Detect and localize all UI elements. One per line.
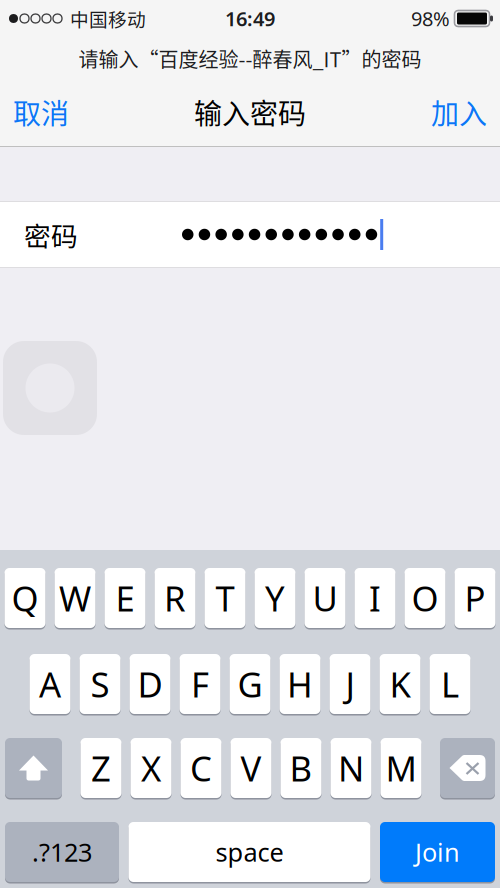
button[interactable]: F: [179, 654, 220, 714]
staticText: .?123: [32, 835, 92, 869]
staticText: O: [411, 575, 438, 621]
staticText: U: [312, 575, 337, 621]
button[interactable]: E: [104, 568, 145, 628]
staticText: 密码: [24, 215, 78, 254]
staticText: Q: [11, 575, 38, 621]
staticText: K: [389, 661, 410, 707]
staticText: D: [137, 661, 162, 707]
staticText: S: [90, 661, 109, 707]
button[interactable]: C: [180, 738, 221, 798]
staticText: T: [215, 575, 234, 621]
staticText: W: [59, 575, 91, 621]
button[interactable]: Join: [380, 822, 495, 882]
button[interactable]: D: [129, 654, 170, 714]
button[interactable]: H: [279, 654, 320, 714]
staticText: X: [141, 745, 161, 791]
staticText: G: [237, 661, 262, 707]
button[interactable]: Shift: [5, 738, 62, 798]
staticText: Z: [91, 745, 111, 791]
staticText: N: [338, 745, 364, 791]
staticText: 16:49: [225, 5, 275, 32]
staticText: M: [385, 745, 416, 791]
staticText: E: [115, 575, 134, 621]
staticText: I: [369, 575, 381, 621]
button[interactable]: I: [354, 568, 395, 628]
staticText: Y: [265, 575, 285, 621]
staticText: B: [289, 745, 312, 791]
button[interactable]: Delete: [440, 738, 495, 798]
button[interactable]: .?123: [5, 822, 119, 882]
staticText: A: [39, 661, 61, 707]
staticText: H: [287, 661, 313, 707]
button[interactable]: M: [380, 738, 421, 798]
staticText: space: [215, 835, 283, 869]
button[interactable]: Q: [4, 568, 45, 628]
button[interactable]: W: [54, 568, 95, 628]
button[interactable]: L: [429, 654, 470, 714]
staticText: P: [464, 575, 485, 621]
staticText: 取消: [13, 92, 69, 132]
button[interactable]: N: [330, 738, 371, 798]
button[interactable]: B: [280, 738, 321, 798]
button[interactable]: X: [130, 738, 171, 798]
button[interactable]: J: [329, 654, 370, 714]
button[interactable]: G: [229, 654, 270, 714]
button[interactable]: U: [304, 568, 345, 628]
staticText: 加入: [431, 92, 487, 132]
staticText: L: [441, 661, 459, 707]
button[interactable]: K: [379, 654, 420, 714]
button[interactable]: T: [204, 568, 245, 628]
staticText: 输入密码: [194, 92, 306, 132]
staticText: Join: [415, 835, 460, 869]
staticText: V: [240, 745, 261, 791]
staticText: 中国移动: [70, 5, 146, 32]
button[interactable]: 加入: [418, 78, 500, 146]
button[interactable]: 取消: [0, 78, 82, 146]
button[interactable]: R: [154, 568, 195, 628]
staticText: 98%: [411, 5, 450, 32]
staticText: C: [190, 745, 212, 791]
button[interactable]: space: [128, 822, 370, 882]
button[interactable]: V: [230, 738, 271, 798]
staticText: R: [164, 575, 186, 621]
staticText: J: [345, 661, 354, 707]
button[interactable]: A: [29, 654, 70, 714]
button[interactable]: P: [454, 568, 495, 628]
staticText: F: [191, 661, 209, 707]
button[interactable]: S: [79, 654, 120, 714]
button[interactable]: O: [404, 568, 445, 628]
staticText: 请输入“百度经验--醉春风_IT”的密码: [78, 44, 421, 73]
button[interactable]: Y: [254, 568, 295, 628]
button[interactable]: Z: [80, 738, 121, 798]
